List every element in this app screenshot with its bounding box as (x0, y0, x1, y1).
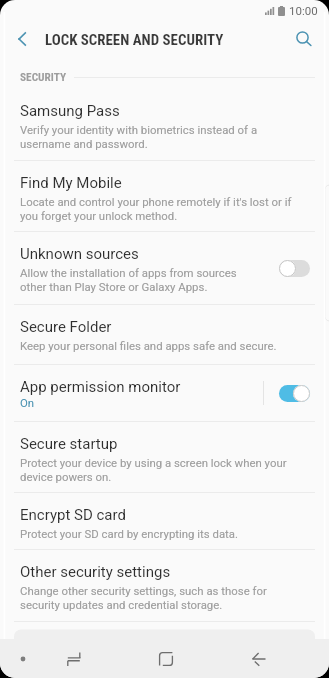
button[interactable]: Secure Folder (0, 305, 329, 364)
staticText: Change other security settings, such as … (20, 584, 300, 612)
button[interactable]: App permission monitor (0, 365, 329, 421)
button[interactable]: Search (292, 27, 316, 51)
staticText: Secure Folder (20, 318, 112, 336)
staticText: Unknown sources (20, 245, 139, 263)
button[interactable]: Recent apps (60, 645, 88, 673)
button[interactable]: Encrypt SD card (0, 493, 329, 549)
button[interactable]: Home (152, 645, 180, 673)
staticText: 10:00 (289, 4, 318, 17)
staticText: Samsung Pass (20, 102, 120, 120)
staticText: Locate and control your phone remotely i… (20, 195, 300, 223)
button[interactable]: Unknown sources (0, 232, 329, 304)
staticText: Verify your identity with biometrics ins… (20, 123, 300, 151)
button[interactable]: Switch on (279, 385, 310, 402)
staticText: Protect your device by using a screen lo… (20, 456, 300, 484)
staticText: App permission monitor (20, 378, 181, 396)
staticText: On (20, 396, 35, 410)
button[interactable]: Navigate up (8, 26, 34, 52)
staticText: Other security settings (20, 563, 171, 581)
staticText: Secure startup (20, 435, 118, 453)
button[interactable]: Back (245, 645, 273, 673)
staticText: Encrypt SD card (20, 506, 126, 524)
button[interactable]: Samsung Pass (0, 89, 329, 160)
staticText: Protect your SD card by encrypting its d… (20, 527, 239, 541)
staticText: Find My Mobile (20, 174, 122, 192)
button[interactable]: Secure startup (0, 422, 329, 492)
staticText: Keep your personal files and apps safe a… (20, 339, 277, 353)
button[interactable]: Find My Mobile (0, 161, 329, 231)
staticText: SECURITY (20, 71, 67, 84)
button[interactable]: Other security settings (0, 550, 329, 621)
staticText: LOCK SCREEN AND SECURITY (45, 31, 224, 48)
button[interactable]: Switch off (279, 260, 310, 277)
staticText: Allow the installation of apps from sour… (20, 266, 255, 294)
